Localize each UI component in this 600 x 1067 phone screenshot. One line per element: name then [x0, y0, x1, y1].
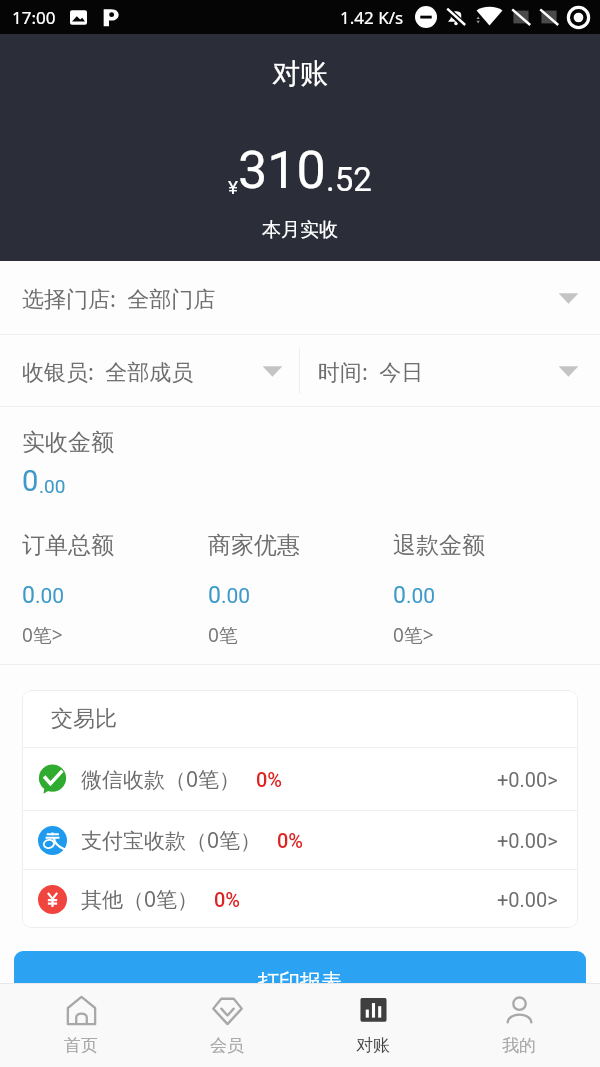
- staticText: 310: [238, 140, 326, 201]
- button[interactable]: 退款金额: [393, 531, 578, 648]
- button[interactable]: 收银员: 全部成员: [0, 335, 299, 406]
- staticText: 支付宝收款（0笔）: [81, 826, 262, 855]
- staticText: 交易比: [51, 705, 117, 733]
- button[interactable]: 我的: [446, 984, 592, 1067]
- button[interactable]: 会员: [154, 984, 300, 1067]
- staticText: .00: [406, 584, 436, 609]
- staticText: +0.00>: [497, 829, 558, 852]
- staticText: 退款金额: [393, 531, 485, 560]
- button[interactable]: 选择门店: 全部门店: [0, 261, 600, 334]
- staticText: 微信收款（0笔）: [81, 765, 241, 794]
- staticText: .00: [35, 584, 65, 609]
- staticText: .52: [326, 160, 372, 199]
- staticText: .00: [39, 475, 66, 497]
- staticText: 0%: [214, 888, 241, 911]
- staticText: 0: [22, 582, 35, 609]
- button[interactable]: 微信收款（0笔）: [22, 748, 578, 810]
- staticText: 0笔>: [22, 622, 63, 648]
- staticText: 收银员: 全部成员: [22, 356, 194, 386]
- staticText: 1.42 K/s: [340, 6, 404, 29]
- staticText: 商家优惠: [208, 531, 300, 560]
- button[interactable]: 打印报表: [14, 951, 586, 1013]
- staticText: 0: [22, 464, 39, 498]
- button[interactable]: 其他（0笔）: [22, 870, 578, 928]
- staticText: 0%: [277, 829, 304, 852]
- staticText: 选择门店: 全部门店: [22, 283, 216, 313]
- staticText: 其他（0笔）: [81, 885, 199, 914]
- staticText: 会员: [210, 1035, 244, 1056]
- staticText: 0笔>: [393, 622, 434, 648]
- button[interactable]: 首页: [8, 984, 154, 1067]
- button[interactable]: 订单总额: [22, 531, 208, 648]
- button[interactable]: 支付宝收款（0笔）: [22, 811, 578, 869]
- button[interactable]: 商家优惠: [208, 531, 393, 648]
- staticText: 0: [208, 582, 221, 609]
- staticText: 0: [393, 582, 406, 609]
- button[interactable]: 对账: [300, 984, 446, 1067]
- staticText: 打印报表: [258, 969, 342, 995]
- staticText: 首页: [64, 1035, 98, 1056]
- staticText: .00: [221, 584, 251, 609]
- staticText: ¥: [228, 176, 238, 198]
- staticText: +0.00>: [497, 888, 558, 911]
- staticText: 0%: [256, 768, 283, 791]
- staticText: 17:00: [12, 6, 56, 29]
- staticText: 时间: 今日: [318, 356, 424, 386]
- staticText: +0.00>: [497, 768, 558, 791]
- staticText: 对账: [272, 56, 328, 91]
- staticText: 对账: [356, 1035, 390, 1056]
- staticText: 0笔: [208, 622, 238, 648]
- staticText: 订单总额: [22, 531, 114, 560]
- staticText: 我的: [502, 1035, 536, 1056]
- staticText: 本月实收: [262, 218, 338, 242]
- button[interactable]: 时间: 今日: [300, 335, 600, 406]
- staticText: 实收金额: [22, 428, 114, 457]
